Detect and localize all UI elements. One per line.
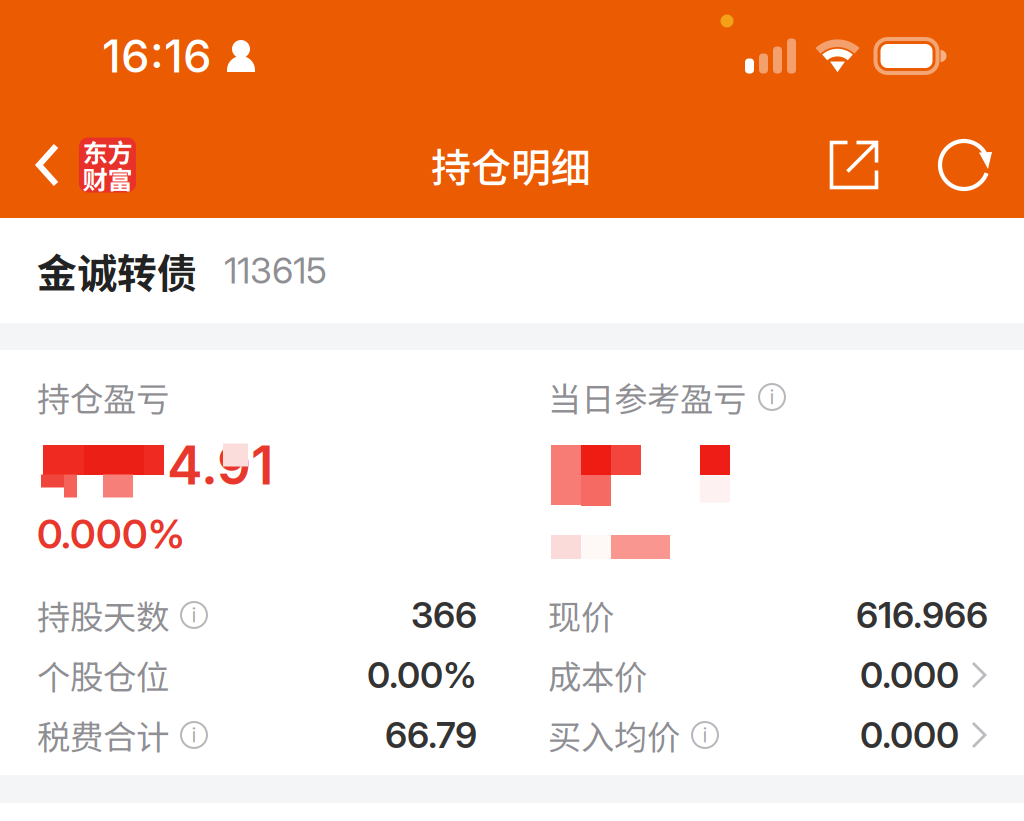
button[interactable]: 买入均价	[548, 705, 988, 765]
button[interactable]: 个股仓位	[37, 645, 477, 705]
staticText: 持仓明细	[431, 136, 591, 194]
staticText: i	[769, 385, 774, 409]
staticText: 4.91	[167, 433, 274, 497]
staticText: 0.000	[860, 653, 959, 697]
staticText: 金诚转债	[37, 241, 197, 299]
button[interactable]: 现价	[548, 585, 988, 645]
staticText: 现价	[548, 591, 614, 639]
staticText: 买入均价	[548, 711, 680, 759]
staticText: 持仓盈亏	[37, 373, 169, 421]
button[interactable]: 持股天数	[37, 585, 477, 645]
staticText: i	[191, 723, 196, 747]
button[interactable]: 税费合计	[37, 705, 477, 765]
button[interactable]: Refresh	[922, 121, 1010, 209]
staticText: 税费合计	[37, 711, 169, 759]
button[interactable]: 持仓盈亏	[37, 374, 217, 420]
staticText: i	[191, 603, 196, 627]
staticText: 66.79	[385, 713, 477, 757]
staticText: 16:16	[102, 29, 212, 83]
staticText: 财富	[82, 160, 132, 197]
staticText: 366	[411, 593, 477, 637]
staticText: 持股天数	[37, 591, 169, 639]
staticText: 113615	[224, 249, 327, 292]
button[interactable]: 成本价	[548, 645, 988, 705]
button[interactable]: 当日参考盈亏	[548, 374, 848, 420]
staticText: 0.000	[860, 713, 959, 757]
staticText: 0.00%	[367, 653, 477, 697]
staticText: i	[702, 723, 707, 747]
staticText: 成本价	[548, 651, 647, 699]
staticText: 当日参考盈亏	[548, 373, 746, 421]
button[interactable]: Share	[810, 121, 898, 209]
button[interactable]: Back	[0, 112, 136, 218]
staticText: 个股仓位	[37, 651, 169, 699]
staticText: 616.966	[856, 593, 988, 637]
staticText: 0.000%	[37, 510, 185, 558]
staticText: 东方	[82, 133, 132, 170]
